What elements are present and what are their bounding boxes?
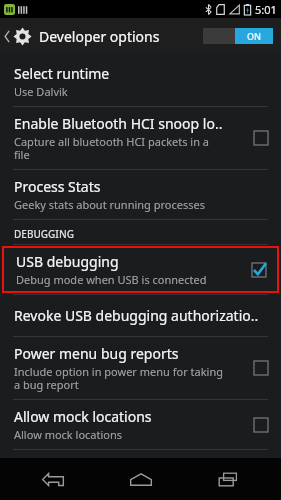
staticText: Developer options bbox=[39, 27, 160, 46]
staticText: Debug mode when USB is connected bbox=[16, 272, 207, 287]
staticText: Include option in power menu for taking … bbox=[14, 364, 223, 392]
button[interactable]: Home bbox=[106, 458, 176, 500]
button[interactable]: Developer options on bbox=[203, 28, 273, 44]
button[interactable]: Revoke USB debugging authorizatio.. bbox=[0, 295, 281, 336]
button[interactable]: USB debugging bbox=[2, 246, 279, 293]
staticText: Use Dalvik bbox=[14, 84, 68, 99]
staticText: ON bbox=[247, 30, 262, 42]
button[interactable]: Power menu bug reports bbox=[0, 337, 281, 399]
staticText: 5:01 bbox=[255, 2, 277, 17]
staticText: Enable Bluetooth HCI snoop lo.. bbox=[14, 114, 223, 133]
button[interactable]: Back bbox=[18, 458, 88, 500]
staticText: Process Stats bbox=[14, 177, 101, 196]
button[interactable]: Navigate up bbox=[0, 18, 170, 54]
staticText: Allow mock locations bbox=[14, 407, 152, 426]
staticText: Revoke USB debugging authorizatio.. bbox=[14, 306, 259, 325]
staticText: USB debugging bbox=[16, 252, 119, 271]
button[interactable]: Process Stats bbox=[0, 170, 281, 219]
button[interactable]: Enable Bluetooth HCI snoop lo.. bbox=[0, 107, 281, 169]
button[interactable]: Recent apps bbox=[193, 458, 263, 500]
button[interactable]: Allow mock locations bbox=[0, 400, 281, 449]
staticText: Capture all bluetooth HCI packets in a f… bbox=[14, 134, 210, 162]
staticText: DEBUGGING bbox=[14, 227, 74, 241]
staticText: Select runtime bbox=[14, 64, 110, 83]
staticText: Allow mock locations bbox=[14, 427, 123, 442]
staticText: Power menu bug reports bbox=[14, 344, 179, 363]
staticText: Geeky stats about running processes bbox=[14, 197, 205, 212]
button[interactable]: Select runtime bbox=[0, 57, 281, 106]
